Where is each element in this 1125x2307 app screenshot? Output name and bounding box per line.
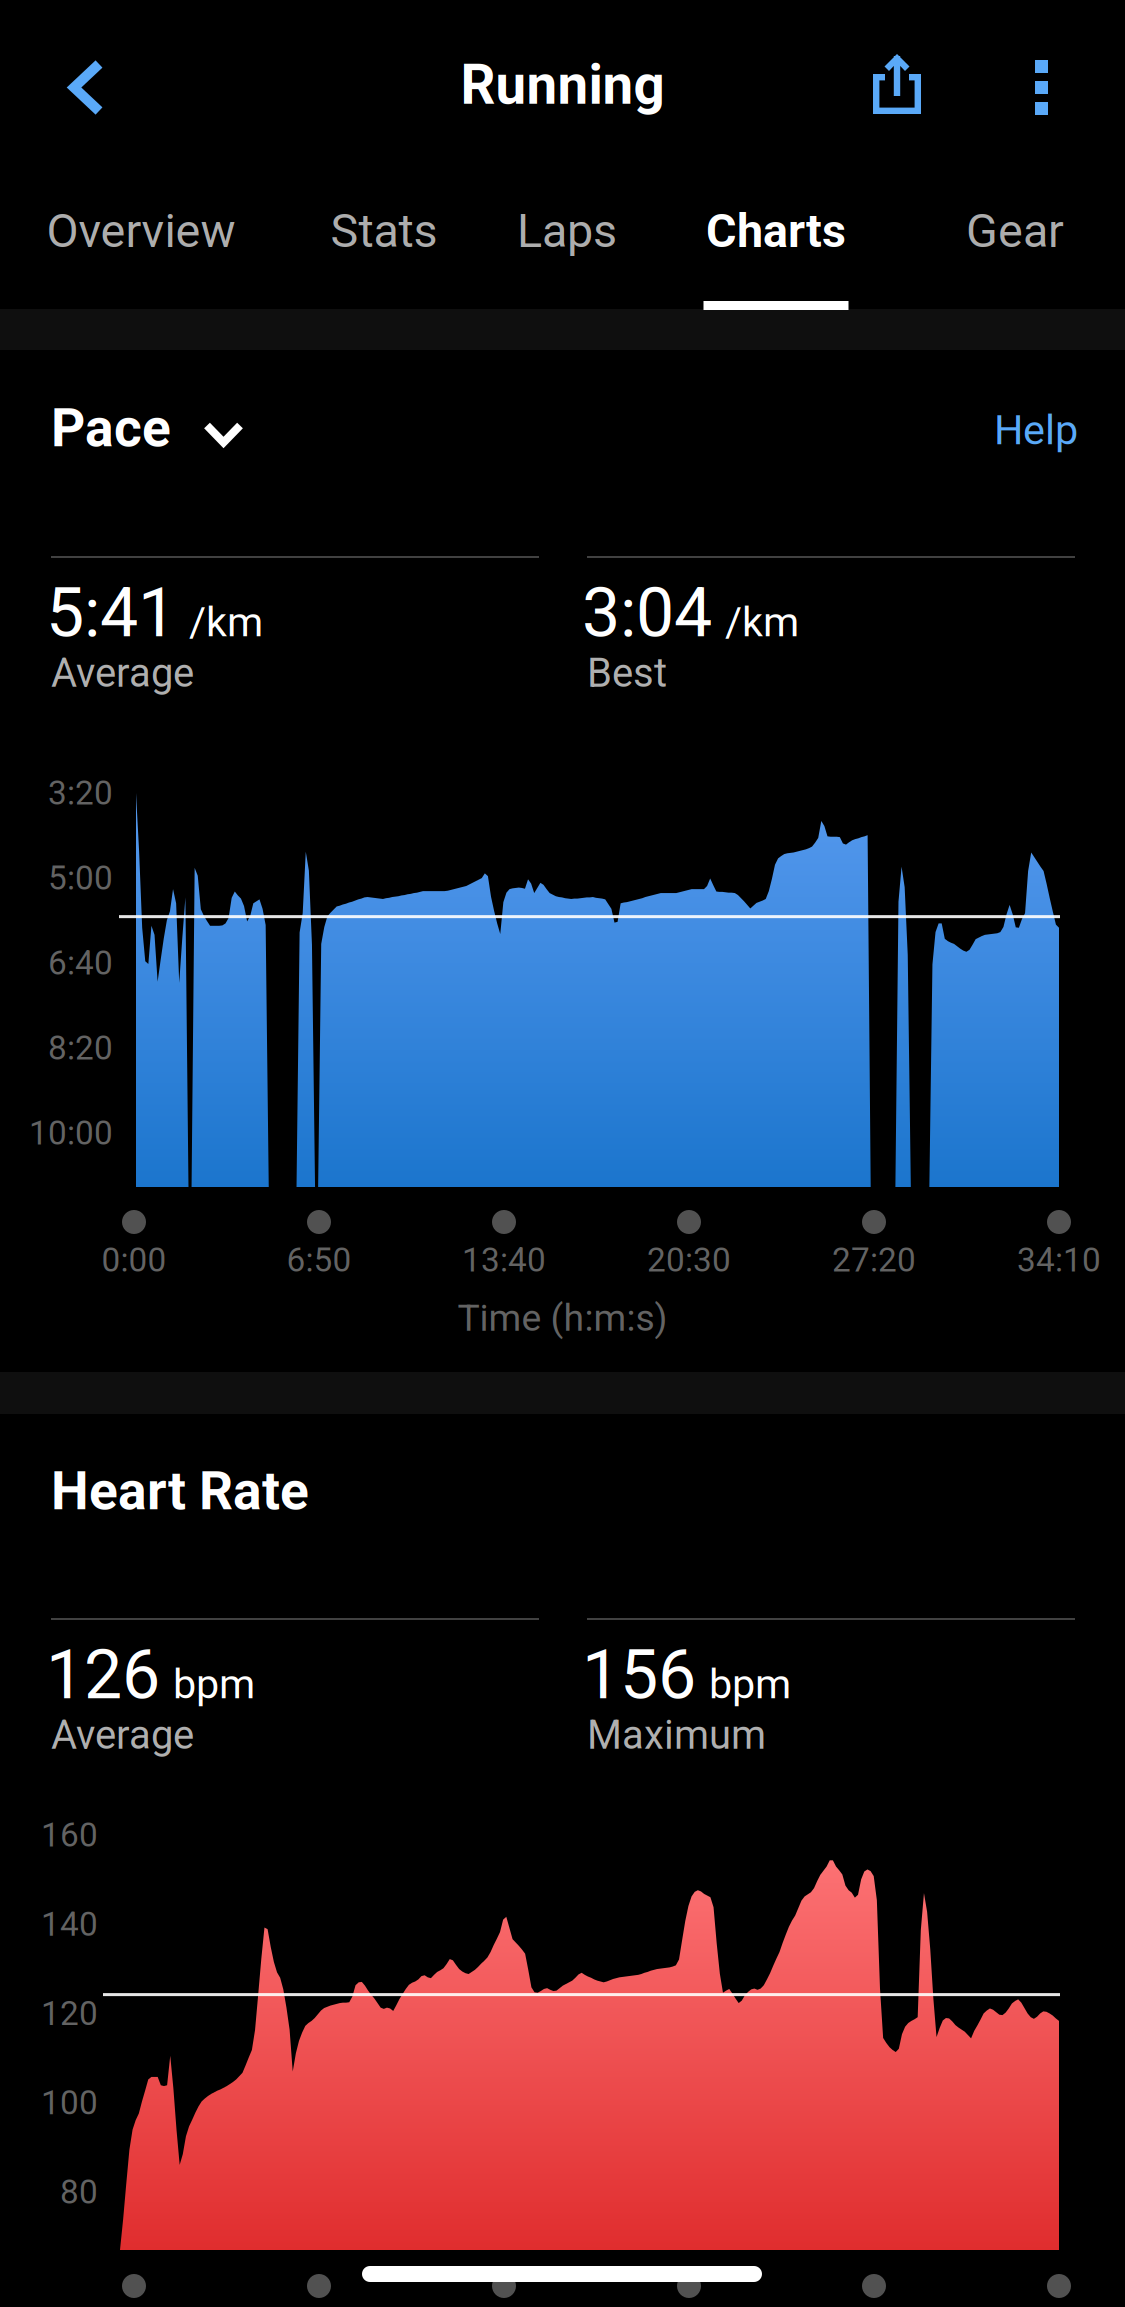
staticText: 156 [582,1635,696,1715]
staticText: 5:41 [46,573,176,653]
button[interactable]: Laps [490,170,644,309]
staticText: Average [51,1712,194,1758]
staticText: 5:00 [48,858,113,898]
staticText: /km [725,598,799,646]
staticText: Heart Rate [51,1460,309,1522]
staticText: bpm [173,1660,255,1708]
staticText: bpm [709,1660,791,1708]
staticText: 80 [60,2173,98,2212]
staticText: 3:04 [582,573,712,653]
button[interactable]: Charts [676,170,875,309]
staticText: 3:20 [48,773,113,813]
button[interactable]: Help [980,388,1092,472]
staticText: 0:00 [101,1240,166,1280]
staticText: 126 [46,1635,160,1715]
staticText: Best [587,650,667,696]
staticText: 34:10 [1017,1240,1101,1280]
staticText: Stats [330,204,437,258]
staticText: Time (h:m:s) [457,1296,667,1340]
staticText: 10:00 [29,1113,113,1153]
button[interactable]: More options [999,30,1084,145]
staticText: Help [994,406,1078,454]
staticText: 160 [41,1815,98,1855]
staticText: 120 [41,1994,98,2033]
staticText: 6:40 [48,943,113,983]
staticText: Pace [51,397,171,459]
staticText: 20:30 [647,1240,731,1280]
staticText: 100 [41,2083,98,2122]
button[interactable]: Pace [43,386,248,470]
staticText: 6:50 [286,1240,351,1280]
staticText: Charts [706,204,846,258]
button[interactable]: Gear [939,170,1091,309]
staticText: 8:20 [48,1028,113,1068]
button[interactable]: Overview [19,170,263,309]
button[interactable]: Back [38,25,141,150]
staticText: 140 [41,1905,98,1944]
staticText: Laps [517,204,617,258]
staticText: 27:20 [832,1240,916,1280]
staticText: Maximum [587,1712,766,1758]
button[interactable]: Share [843,26,951,142]
button[interactable]: Stats [304,170,463,309]
staticText: Average [51,650,194,696]
staticText: Gear [966,204,1064,258]
staticText: Running [460,53,664,117]
staticText: Overview [46,204,235,258]
staticText: 13:40 [462,1240,546,1280]
staticText: /km [189,598,263,646]
